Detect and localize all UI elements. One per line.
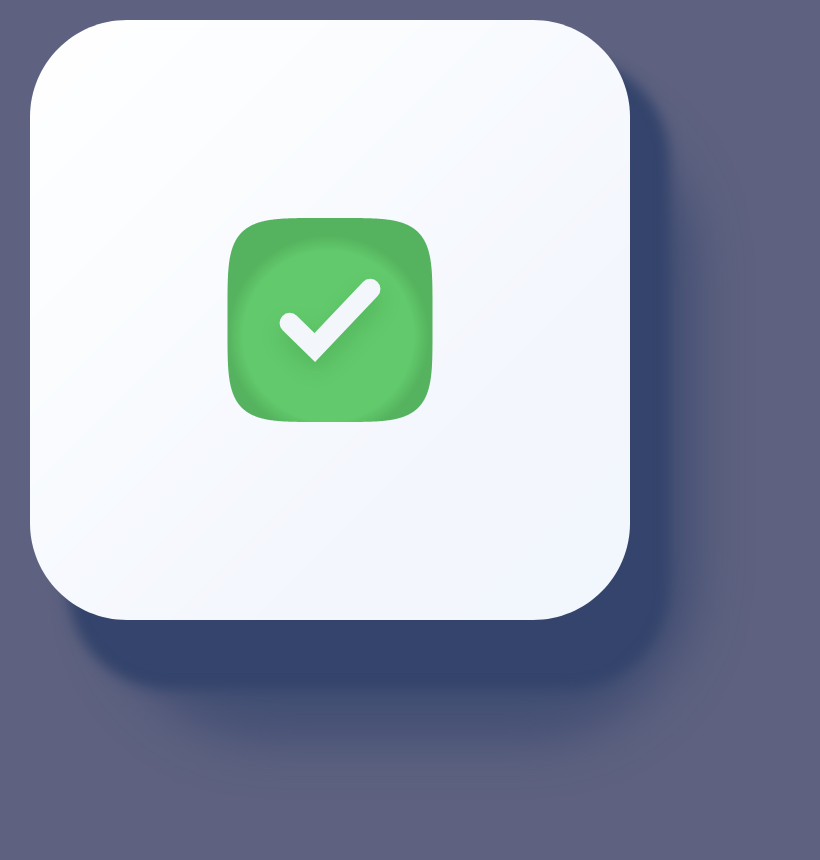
button[interactable]: Task completed	[0, 0, 820, 860]
